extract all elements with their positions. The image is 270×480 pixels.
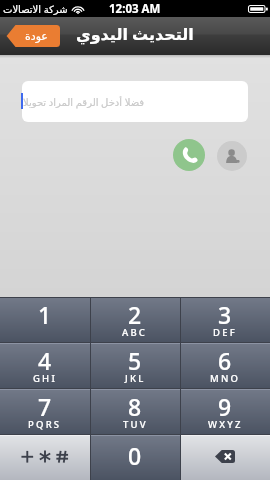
button[interactable]: عودة	[6, 25, 60, 47]
button[interactable]: 6	[180, 342, 270, 388]
staticText: PQRS	[28, 418, 62, 431]
staticText: 3	[218, 299, 232, 330]
staticText: شركة الاتصالات	[3, 2, 68, 16]
staticText: 1	[38, 299, 52, 330]
button[interactable]: Call	[173, 139, 205, 171]
staticText: ABC	[122, 326, 148, 339]
staticText: 4	[38, 345, 52, 376]
button[interactable]: 8	[90, 388, 180, 434]
staticText: التحديث اليدوي	[76, 23, 194, 45]
button[interactable]: 1	[0, 297, 90, 342]
button[interactable]: 5	[90, 342, 180, 388]
button[interactable]	[0, 434, 90, 480]
staticText: GHI	[33, 372, 57, 385]
staticText: 9	[218, 391, 232, 422]
button[interactable]: 0	[90, 434, 180, 480]
button[interactable]: 9	[180, 388, 270, 434]
staticText: 12:03 AM	[109, 1, 161, 17]
staticText: 6	[218, 345, 232, 376]
staticText: 2	[128, 299, 142, 330]
staticText: WXYZ	[208, 418, 243, 431]
staticText: 5	[128, 345, 142, 376]
staticText: JKL	[125, 372, 146, 385]
staticText: عودة	[25, 30, 48, 43]
button[interactable]: فضلا أدخل الرقم المراد تحويلا	[22, 81, 248, 122]
staticText: 8	[128, 391, 142, 422]
staticText: DEF	[213, 326, 237, 339]
staticText: TUV	[123, 418, 148, 431]
button[interactable]: Delete	[180, 434, 270, 480]
staticText: MNO	[210, 372, 241, 385]
button[interactable]: Contacts	[217, 141, 247, 171]
button[interactable]: 7	[0, 388, 90, 434]
button[interactable]: 3	[180, 297, 270, 342]
button[interactable]: 2	[90, 297, 180, 342]
staticText: فضلا أدخل الرقم المراد تحويلا	[23, 95, 145, 109]
staticText: 7	[38, 391, 52, 422]
button[interactable]: 4	[0, 342, 90, 388]
staticText: 0	[128, 440, 142, 471]
